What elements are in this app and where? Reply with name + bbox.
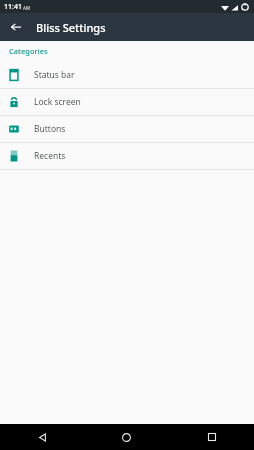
staticText: Lock screen — [34, 96, 81, 108]
staticText: 11:41 — [4, 2, 22, 12]
button[interactable]: Recents — [169, 424, 254, 450]
staticText: Recents — [34, 150, 66, 162]
button[interactable]: Lock screen — [0, 89, 254, 115]
button[interactable]: Buttons — [0, 116, 254, 142]
staticText: Bliss Settings — [36, 20, 106, 35]
button[interactable]: Status bar — [0, 62, 254, 88]
staticText: AM — [23, 5, 31, 11]
staticText: Buttons — [34, 123, 66, 135]
staticText: Status bar — [34, 69, 75, 81]
button[interactable]: Home — [84, 424, 169, 450]
button[interactable]: Back — [5, 16, 27, 38]
button[interactable]: Recents — [0, 143, 254, 169]
button[interactable]: Back — [0, 424, 84, 450]
staticText: Categories — [9, 46, 48, 56]
